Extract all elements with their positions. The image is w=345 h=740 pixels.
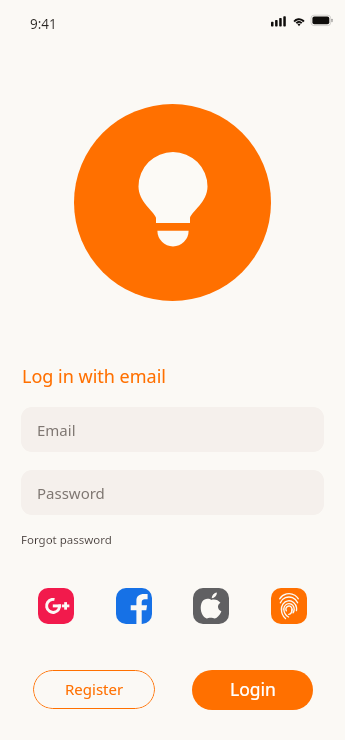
button[interactable]: Sign in with Google	[38, 588, 74, 624]
staticText: Email	[37, 420, 76, 440]
button[interactable]: Sign in with fingerprint	[271, 588, 307, 624]
button[interactable]: Sign in with Facebook	[116, 588, 152, 624]
button[interactable]: Forgot password	[21, 529, 112, 551]
staticText: Forgot password	[21, 532, 112, 548]
button[interactable]: Password	[21, 470, 324, 515]
staticText: Password	[37, 483, 105, 503]
staticText: Register	[65, 679, 124, 699]
button[interactable]: Email	[21, 407, 324, 452]
staticText: 9:41	[30, 15, 57, 33]
staticText: Login	[230, 677, 276, 701]
button[interactable]: Register	[33, 670, 155, 709]
button[interactable]: Sign in with Apple	[193, 588, 229, 624]
staticText: Log in with email	[22, 364, 166, 389]
button[interactable]: Login	[192, 670, 313, 710]
